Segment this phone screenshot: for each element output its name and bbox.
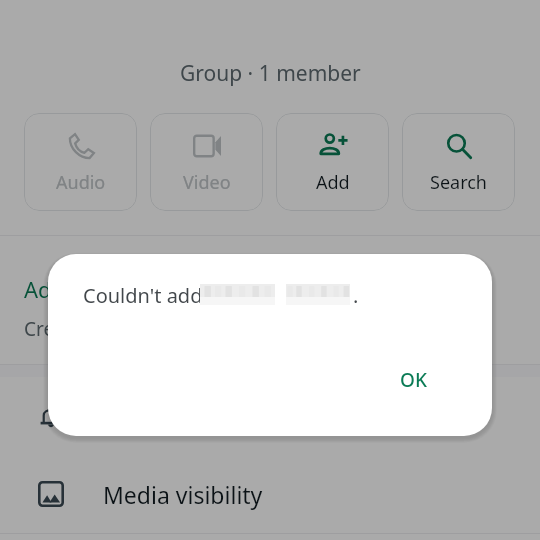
button[interactable]: Audio — [24, 113, 137, 211]
button[interactable]: Notifications — [0, 379, 540, 455]
staticText: Media visibility — [103, 479, 263, 510]
staticText: Group · 1 member — [180, 59, 361, 88]
staticText: Audio — [56, 170, 106, 195]
staticText: Add — [316, 170, 350, 195]
button[interactable]: Add group description — [0, 236, 540, 364]
button[interactable]: Video — [150, 113, 263, 211]
button[interactable]: Search — [402, 113, 515, 211]
staticText: Search — [430, 170, 487, 195]
button[interactable]: Media visibility — [0, 455, 540, 533]
button[interactable]: OK — [371, 358, 455, 402]
staticText: Couldn't add — [83, 282, 203, 309]
staticText: Video — [183, 170, 231, 195]
staticText: Created by you, 03/08/2023 — [24, 316, 270, 342]
staticText: Add group description — [24, 274, 256, 304]
staticText: OK — [400, 367, 427, 393]
button[interactable]: Add — [276, 113, 389, 211]
staticText: . — [353, 282, 359, 309]
